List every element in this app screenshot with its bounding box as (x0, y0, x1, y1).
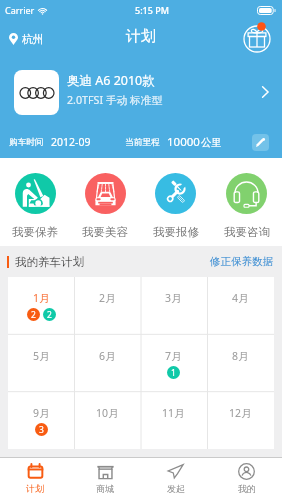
staticText: 2.0TFSI 手动 标准型 (67, 93, 163, 108)
button[interactable]: 6月 (74, 335, 140, 392)
staticText: 计划 (26, 483, 44, 494)
button[interactable]: Gifts (243, 25, 271, 53)
button[interactable]: 11月 (140, 392, 207, 449)
staticText: 我的 (238, 483, 256, 494)
button[interactable]: 3月 (140, 277, 207, 335)
staticText: 1 (171, 367, 176, 379)
staticText: 2月 (99, 291, 116, 305)
button[interactable]: 我要保养 (0, 158, 70, 246)
staticText: 我要咨询 (224, 225, 270, 239)
button[interactable]: 修正保养数据 (201, 250, 282, 273)
button[interactable]: 9月 (8, 392, 74, 449)
staticText: 9月 (33, 406, 50, 420)
staticText: 10000 (167, 134, 200, 150)
staticText: 12月 (229, 406, 252, 420)
button[interactable]: 发起 (140, 457, 211, 500)
staticText: 8月 (232, 349, 249, 363)
staticText: 计划 (126, 27, 156, 46)
staticText: 5月 (33, 349, 50, 363)
button[interactable]: 商城 (70, 457, 140, 500)
staticText: 购车时间 (9, 137, 44, 148)
staticText: 当前里程 (125, 137, 160, 148)
staticText: 奥迪 A6 2010款 (67, 72, 155, 89)
other: Car details (261, 85, 269, 99)
staticText: 公里 (201, 136, 222, 149)
button[interactable]: 我的 (211, 457, 282, 500)
button[interactable]: 4月 (207, 277, 274, 335)
staticText: 11月 (162, 406, 185, 420)
button[interactable]: 我要美容 (70, 158, 140, 246)
button[interactable]: 杭州 (7, 28, 46, 50)
staticText: 6月 (99, 349, 116, 363)
button[interactable]: 1月 (8, 277, 74, 335)
staticText: 杭州 (22, 32, 44, 46)
staticText: 3月 (165, 291, 182, 305)
button[interactable]: 计划 (0, 457, 70, 500)
staticText: 2 (47, 309, 52, 321)
staticText: 10月 (96, 406, 119, 420)
staticText: 发起 (167, 483, 185, 494)
button[interactable]: 10月 (74, 392, 140, 449)
button[interactable]: 我要报修 (140, 158, 211, 246)
staticText: 5:15 PM (135, 4, 169, 16)
staticText: 我要保养 (12, 225, 58, 239)
staticText: 修正保养数据 (210, 255, 273, 268)
button[interactable]: 8月 (207, 335, 274, 392)
button[interactable]: 12月 (207, 392, 274, 449)
staticText: 7月 (165, 349, 182, 363)
staticText: 我要美容 (82, 225, 128, 239)
staticText: 2 (31, 309, 36, 321)
button[interactable]: 5月 (8, 335, 74, 392)
staticText: 我的养车计划 (15, 255, 84, 269)
button[interactable]: 2月 (74, 277, 140, 335)
staticText: 我要报修 (153, 225, 199, 239)
staticText: 2012-09 (51, 135, 91, 149)
staticText: 商城 (96, 483, 114, 494)
staticText: 4月 (232, 291, 249, 305)
staticText: Carrier (5, 4, 35, 16)
button[interactable]: 我要咨询 (211, 158, 282, 246)
staticText: 3 (39, 424, 44, 436)
staticText: 1月 (33, 291, 50, 305)
button[interactable]: Edit (252, 134, 269, 151)
button[interactable]: 7月 (140, 335, 207, 392)
